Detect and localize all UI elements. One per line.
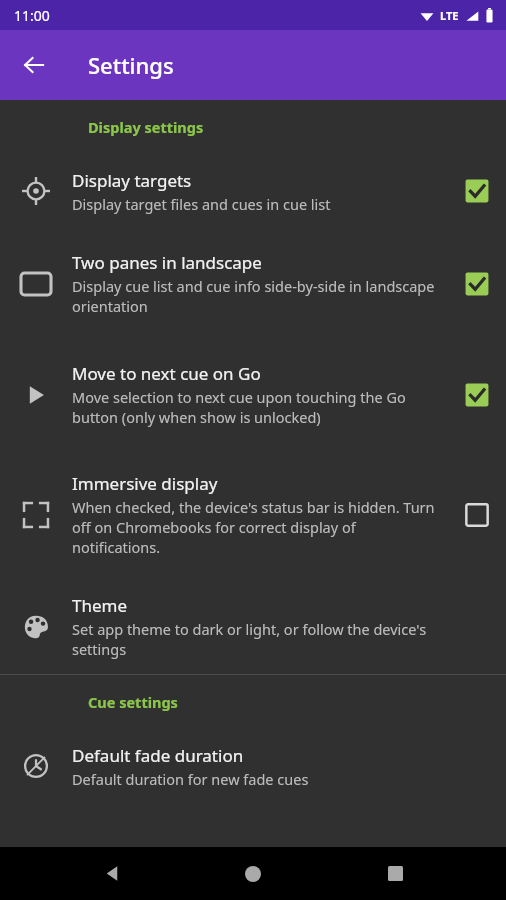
button[interactable]: Checked [456,263,498,305]
button[interactable]: Unchecked [456,494,498,536]
staticText: When checked, the device's status bar is… [72,497,442,557]
button[interactable]: Recent apps [365,847,425,900]
staticText: Settings [88,50,174,80]
button[interactable]: Back [82,847,142,900]
button[interactable]: Home [223,847,283,900]
button[interactable]: Immersive display [0,450,506,579]
staticText: Immersive display [72,472,218,495]
staticText: Set app theme to dark or light, or follo… [72,619,442,659]
button[interactable]: Checked [456,170,498,212]
staticText: Display targets [72,169,192,192]
staticText: Cue settings [88,692,178,712]
staticText: Move selection to next cue upon touching… [72,387,442,427]
button[interactable]: Display targets [0,154,506,228]
button[interactable]: Two panes in landscape [0,228,506,339]
staticText: Default fade duration [72,744,244,767]
button[interactable]: Default fade duration [0,729,506,803]
staticText: Move to next cue on Go [72,362,261,385]
button[interactable]: Checked [456,374,498,416]
staticText: 11:00 [14,6,50,25]
staticText: Theme [72,594,128,617]
staticText: LTE [440,8,459,23]
button[interactable]: Back [10,41,58,89]
staticText: Display cue list and cue info side-by-si… [72,276,442,316]
staticText: Two panes in landscape [72,251,262,274]
button[interactable]: Move to next cue on Go [0,339,506,450]
button[interactable]: Theme [0,579,506,674]
staticText: Display target files and cues in cue lis… [72,194,331,214]
staticText: Default duration for new fade cues [72,769,309,789]
staticText: Display settings [88,117,204,137]
